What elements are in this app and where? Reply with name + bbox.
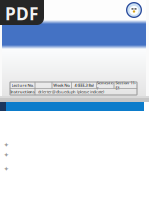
staticText: Lecture No.	[11, 83, 33, 88]
staticText: dr.lerter@dlsu.edu.ph (please indicate)	[38, 89, 104, 94]
staticText: Section 11-E1	[115, 80, 135, 90]
staticText: ✦	[3, 165, 9, 173]
button[interactable]: PDF	[0, 0, 44, 25]
staticText: Week No.	[53, 83, 70, 88]
staticText: PDF	[5, 2, 39, 25]
staticText: 4 (EEE-3 8a)	[74, 83, 93, 88]
staticText: ✦	[3, 151, 9, 159]
staticText: Instructions	[10, 89, 35, 94]
staticText: Semester	[97, 80, 114, 90]
staticText: ✦	[3, 141, 9, 149]
